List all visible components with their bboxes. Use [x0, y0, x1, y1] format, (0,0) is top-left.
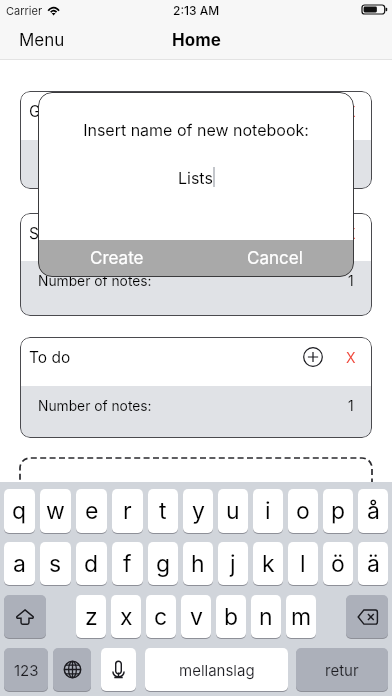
- staticText: ö: [331, 550, 345, 578]
- staticText: Cancel: [247, 248, 303, 269]
- button[interactable]: o: [288, 489, 318, 533]
- button[interactable]: e: [76, 489, 107, 533]
- button[interactable]: Shift: [4, 595, 46, 638]
- button[interactable]: c: [146, 595, 176, 638]
- button[interactable]: t: [148, 489, 178, 533]
- staticText: d: [84, 550, 99, 578]
- button[interactable]: s: [40, 542, 71, 585]
- button[interactable]: [20, 458, 372, 518]
- staticText: Number of notes:: [38, 398, 152, 415]
- button[interactable]: Backspace: [346, 595, 388, 638]
- staticText: To do: [29, 348, 71, 367]
- staticText: h: [191, 550, 205, 578]
- staticText: Number of notes:: [38, 273, 152, 290]
- button[interactable]: retur: [296, 648, 388, 691]
- button[interactable]: l: [288, 542, 318, 585]
- staticText: t: [159, 497, 167, 525]
- staticText: g: [156, 550, 171, 578]
- button[interactable]: n: [251, 595, 281, 638]
- staticText: b: [224, 603, 239, 631]
- button[interactable]: To do: [20, 337, 372, 438]
- staticText: j: [230, 550, 236, 578]
- button[interactable]: y: [183, 489, 213, 533]
- button[interactable]: g: [148, 542, 178, 585]
- staticText: Menu: [19, 30, 65, 51]
- button[interactable]: x: [111, 595, 141, 638]
- button[interactable]: ö: [323, 542, 353, 585]
- staticText: y: [192, 497, 205, 525]
- button[interactable]: w: [40, 489, 71, 533]
- button[interactable]: Add note: [300, 344, 326, 370]
- button[interactable]: a: [4, 542, 35, 585]
- staticText: retur: [325, 661, 359, 679]
- staticText: Carrier: [6, 4, 43, 17]
- button[interactable]: p: [323, 489, 353, 533]
- staticText: q: [12, 497, 27, 525]
- staticText: X: [346, 225, 356, 242]
- staticText: l: [300, 550, 306, 578]
- button[interactable]: Shopping: [20, 213, 372, 316]
- staticText: v: [190, 603, 203, 631]
- staticText: f: [123, 550, 132, 578]
- staticText: Number of notes:: [38, 152, 152, 169]
- staticText: Home: [172, 30, 221, 51]
- button[interactable]: ä: [358, 542, 388, 585]
- button[interactable]: f: [112, 542, 143, 585]
- button[interactable]: b: [216, 595, 246, 638]
- button[interactable]: z: [76, 595, 106, 638]
- button[interactable]: Create: [38, 240, 196, 277]
- staticText: Shopping: [29, 224, 99, 243]
- staticText: 123: [14, 661, 39, 679]
- button[interactable]: å: [358, 489, 388, 533]
- button[interactable]: u: [218, 489, 248, 533]
- button[interactable]: Menu: [0, 22, 79, 59]
- button[interactable]: i: [253, 489, 283, 533]
- staticText: i: [265, 497, 271, 525]
- button[interactable]: 123: [4, 648, 48, 691]
- button[interactable]: k: [253, 542, 283, 585]
- staticText: o: [296, 497, 310, 525]
- staticText: X: [346, 103, 356, 120]
- button[interactable]: Cancel: [196, 240, 354, 277]
- button[interactable]: Dictate: [101, 648, 136, 691]
- staticText: Insert name of new notebook:: [38, 120, 354, 139]
- button[interactable]: Delete notebook: [342, 224, 360, 242]
- button[interactable]: v: [181, 595, 211, 638]
- button[interactable]: Change keyboard: [53, 648, 91, 691]
- staticText: p: [331, 497, 346, 525]
- button[interactable]: m: [286, 595, 316, 638]
- staticText: 1: [348, 398, 354, 415]
- staticText: ä: [367, 550, 380, 578]
- staticText: 1: [348, 152, 354, 169]
- staticText: s: [49, 550, 62, 578]
- staticText: 1: [348, 273, 354, 290]
- staticText: å: [367, 497, 380, 525]
- button[interactable]: q: [4, 489, 35, 533]
- staticText: 2:13 AM: [173, 3, 220, 18]
- button[interactable]: Grocery: [20, 91, 372, 189]
- button[interactable]: j: [218, 542, 248, 585]
- button[interactable]: r: [112, 489, 143, 533]
- staticText: mellanslag: [179, 661, 255, 679]
- button[interactable]: Delete notebook: [342, 348, 360, 366]
- staticText: u: [226, 497, 240, 525]
- button[interactable]: d: [76, 542, 107, 585]
- staticText: Create: [90, 248, 144, 269]
- staticText: Grocery: [29, 102, 89, 121]
- button[interactable]: mellanslag: [145, 648, 288, 691]
- button[interactable]: h: [183, 542, 213, 585]
- staticText: w: [46, 497, 65, 525]
- staticText: n: [259, 603, 273, 631]
- button[interactable]: Delete notebook: [342, 102, 360, 120]
- staticText: X: [346, 349, 356, 366]
- staticText: x: [120, 603, 133, 631]
- staticText: r: [123, 497, 132, 525]
- staticText: a: [13, 550, 26, 578]
- staticText: Lists: [178, 168, 213, 187]
- staticText: c: [154, 603, 168, 631]
- staticText: e: [85, 497, 99, 525]
- button[interactable]: Add note: [300, 220, 326, 246]
- staticText: m: [291, 603, 312, 631]
- staticText: z: [85, 603, 98, 631]
